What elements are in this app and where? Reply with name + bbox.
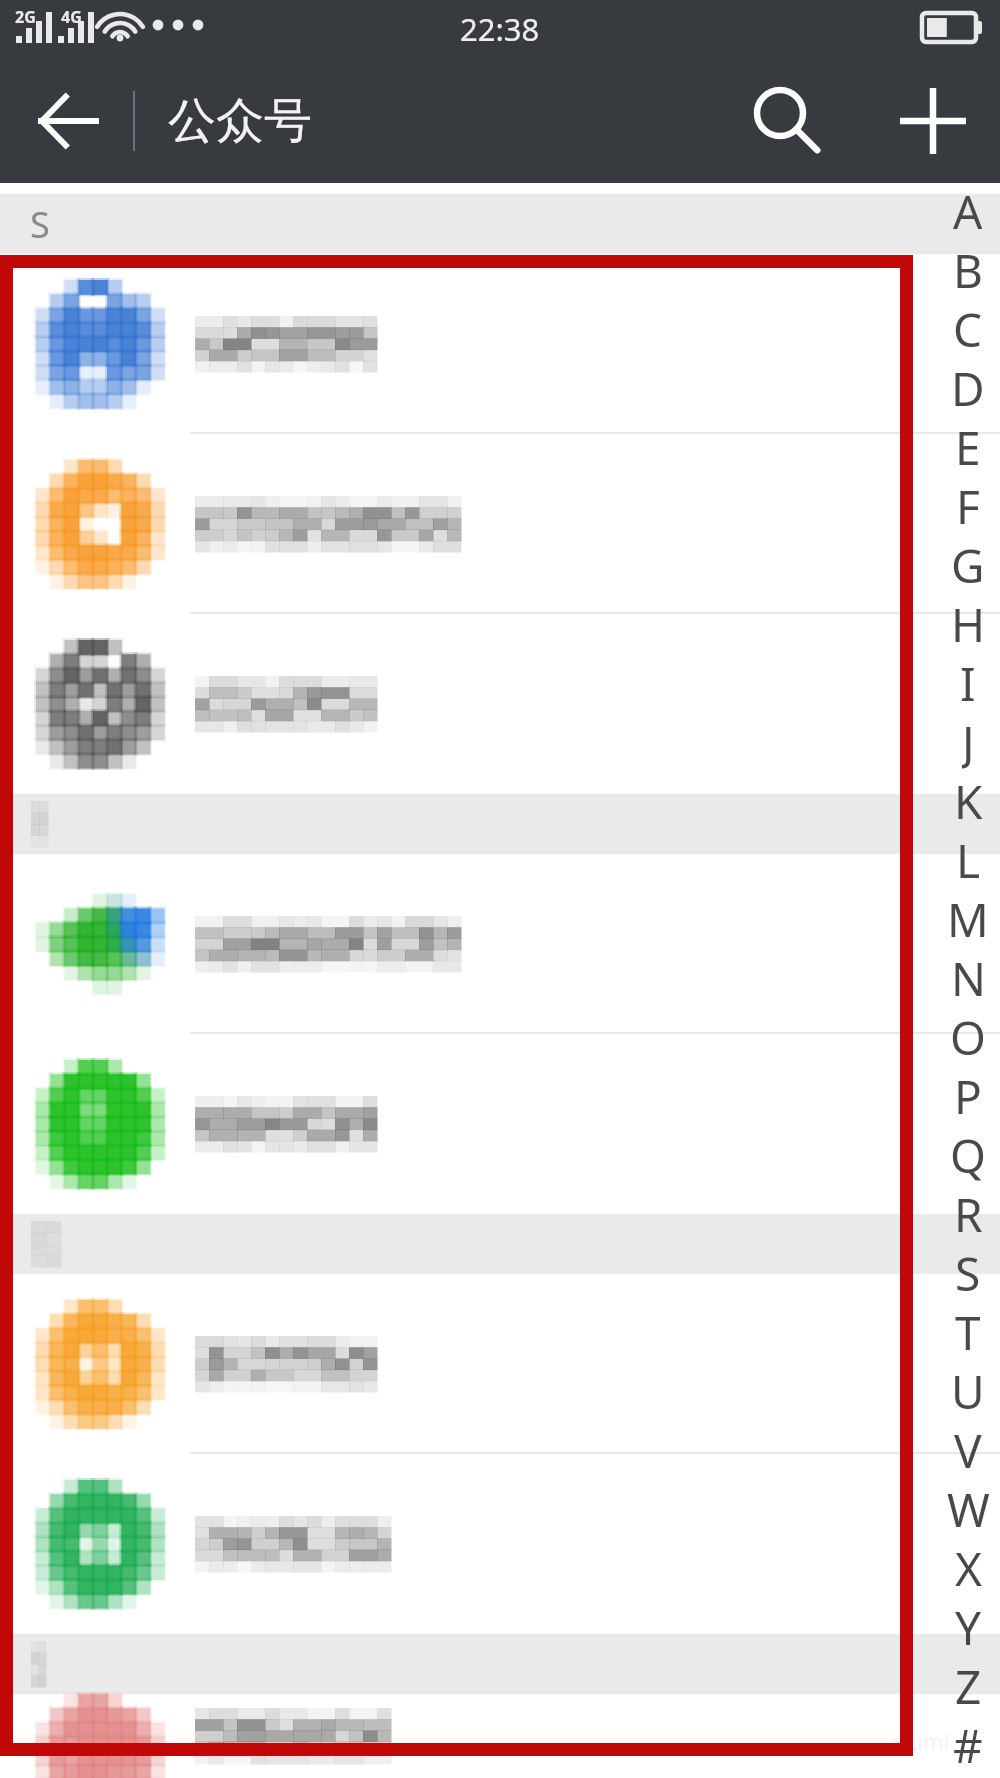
- button[interactable]: B: [936, 239, 1000, 298]
- staticText: R: [954, 1183, 983, 1242]
- button[interactable]: Add: [873, 58, 993, 183]
- button[interactable]: [0, 1694, 1000, 1778]
- staticText: L: [956, 829, 981, 888]
- staticText: W: [947, 1478, 990, 1537]
- button[interactable]: J: [936, 711, 1000, 770]
- button[interactable]: Q: [936, 1124, 1000, 1183]
- button[interactable]: [0, 1274, 1000, 1454]
- button[interactable]: #: [936, 1714, 1000, 1773]
- staticText: B: [953, 239, 983, 298]
- button[interactable]: P: [936, 1065, 1000, 1124]
- button[interactable]: O: [936, 1006, 1000, 1065]
- button[interactable]: V: [936, 1419, 1000, 1478]
- button[interactable]: N: [936, 947, 1000, 1006]
- staticText: H: [951, 593, 986, 652]
- button[interactable]: R: [936, 1183, 1000, 1242]
- button[interactable]: W: [936, 1478, 1000, 1537]
- staticText: M: [947, 888, 989, 947]
- button[interactable]: D: [936, 357, 1000, 416]
- staticText: Y: [955, 1596, 982, 1655]
- staticText: X: [955, 1537, 982, 1596]
- button[interactable]: [0, 854, 1000, 1034]
- button[interactable]: [0, 254, 1000, 434]
- staticText: K: [954, 770, 983, 829]
- button[interactable]: C: [936, 298, 1000, 357]
- staticText: U: [951, 1360, 985, 1419]
- staticText: 公众号: [168, 91, 312, 151]
- staticText: E: [955, 416, 981, 475]
- button[interactable]: Back: [8, 58, 128, 183]
- staticText: T: [955, 1301, 981, 1360]
- button[interactable]: I: [936, 652, 1000, 711]
- staticText: V: [954, 1419, 982, 1478]
- button[interactable]: U: [936, 1360, 1000, 1419]
- button[interactable]: X: [936, 1537, 1000, 1596]
- staticText: 4G: [61, 6, 82, 28]
- staticText: xiumi: [892, 1726, 950, 1756]
- staticText: J: [962, 711, 975, 770]
- button[interactable]: E: [936, 416, 1000, 475]
- button[interactable]: Z: [936, 1655, 1000, 1714]
- staticText: F: [956, 475, 980, 534]
- button[interactable]: T: [936, 1301, 1000, 1360]
- staticText: 22:38: [460, 8, 540, 50]
- staticText: O: [950, 1006, 986, 1065]
- button[interactable]: Y: [936, 1596, 1000, 1655]
- button[interactable]: F: [936, 475, 1000, 534]
- staticText: S: [955, 1242, 981, 1301]
- button[interactable]: H: [936, 593, 1000, 652]
- staticText: A: [953, 180, 983, 239]
- staticText: Q: [950, 1124, 986, 1183]
- staticText: C: [953, 298, 983, 357]
- button[interactable]: S: [936, 1242, 1000, 1301]
- button[interactable]: M: [936, 888, 1000, 947]
- staticText: I: [960, 652, 976, 711]
- button[interactable]: A: [936, 180, 1000, 239]
- staticText: P: [954, 1065, 982, 1124]
- button[interactable]: Search: [727, 58, 847, 183]
- staticText: Z: [955, 1655, 982, 1714]
- button[interactable]: K: [936, 770, 1000, 829]
- button[interactable]: [0, 1034, 1000, 1214]
- button[interactable]: [0, 434, 1000, 614]
- button[interactable]: [0, 1454, 1000, 1634]
- staticText: D: [951, 357, 985, 416]
- staticText: S: [30, 200, 50, 249]
- staticText: N: [951, 947, 986, 1006]
- button[interactable]: G: [936, 534, 1000, 593]
- staticText: #: [953, 1714, 983, 1773]
- staticText: 2G: [15, 6, 36, 28]
- button[interactable]: [0, 614, 1000, 794]
- button[interactable]: L: [936, 829, 1000, 888]
- staticText: G: [951, 534, 985, 593]
